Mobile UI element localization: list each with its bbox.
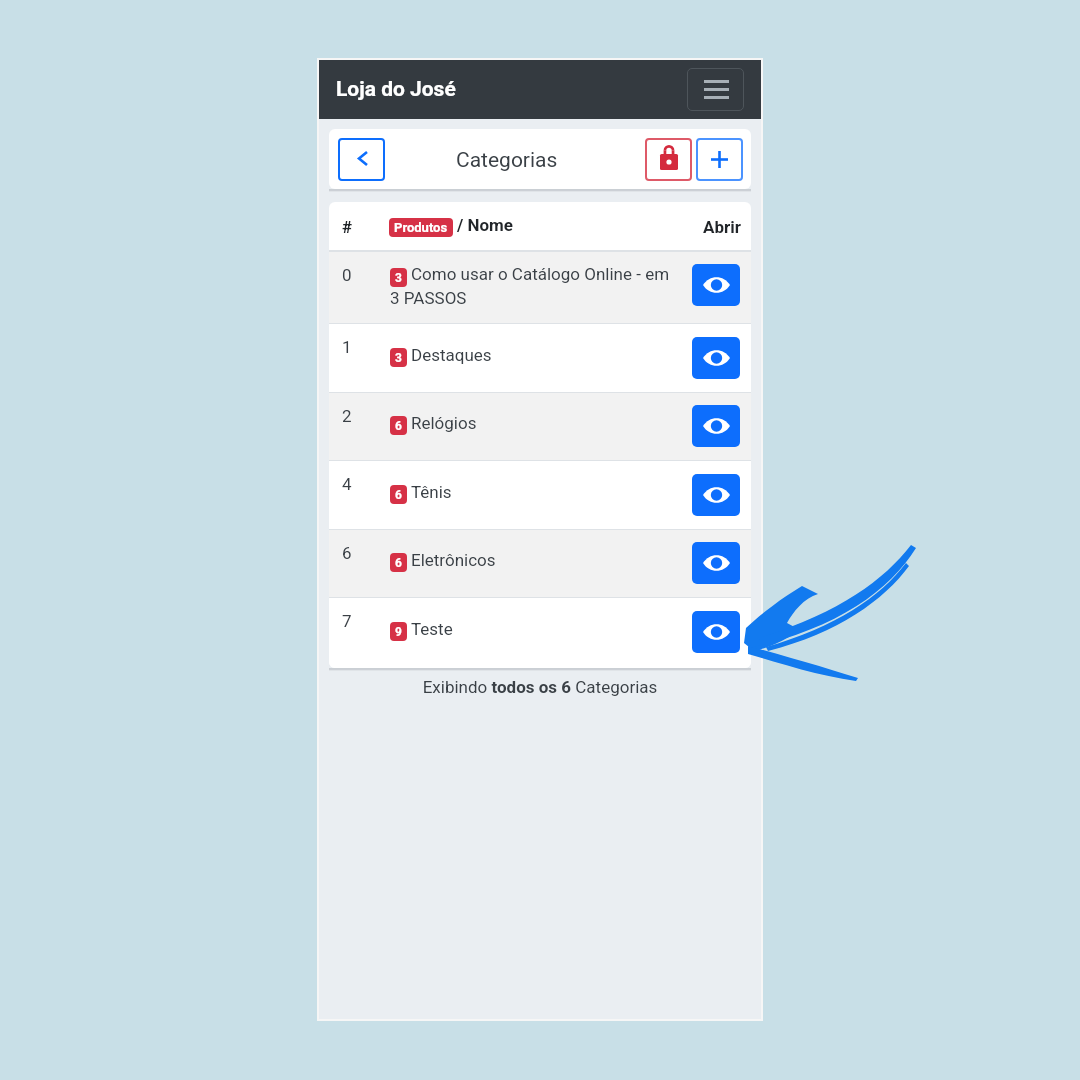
button[interactable]: 6 xyxy=(329,530,751,598)
button[interactable]: Abrir xyxy=(692,337,740,379)
staticText: 6 xyxy=(395,419,402,433)
staticText: / Nome xyxy=(457,215,514,235)
staticText: Categorias xyxy=(456,148,558,173)
staticText: 3 xyxy=(395,271,402,285)
button[interactable]: Adicionar xyxy=(696,138,743,181)
button[interactable]: Abrir xyxy=(692,264,740,306)
staticText: # xyxy=(342,217,353,237)
staticText: 6 xyxy=(342,543,352,563)
staticText: 6 xyxy=(395,488,402,502)
staticText: 7 xyxy=(342,611,352,631)
staticText: 3 xyxy=(395,351,402,365)
button[interactable]: 4 xyxy=(329,461,751,530)
staticText: 0 xyxy=(342,265,352,285)
button[interactable]: Abrir xyxy=(692,542,740,584)
staticText: Como usar o Catálogo Online - em xyxy=(411,264,670,284)
staticText: Teste xyxy=(411,619,453,639)
button[interactable]: Voltar xyxy=(338,138,385,181)
staticText: Eletrônicos xyxy=(411,550,496,570)
staticText: Loja do José xyxy=(336,77,456,102)
staticText: Tênis xyxy=(411,482,452,502)
staticText: 1 xyxy=(342,337,352,357)
staticText: 3 PASSOS xyxy=(390,288,467,308)
button[interactable]: 2 xyxy=(329,393,751,461)
staticText: 4 xyxy=(342,474,352,494)
button[interactable]: 1 xyxy=(329,324,751,393)
button[interactable]: 0 xyxy=(329,252,751,324)
button[interactable]: Menu xyxy=(687,68,744,111)
button[interactable]: Abrir xyxy=(692,474,740,516)
button[interactable]: 7 xyxy=(329,598,751,668)
staticText: 6 xyxy=(395,556,402,570)
button[interactable]: Bloquear xyxy=(645,138,692,181)
staticText: Destaques xyxy=(411,345,492,365)
staticText: Abrir xyxy=(703,217,741,237)
button[interactable]: Abrir xyxy=(692,611,740,653)
staticText: Produtos xyxy=(394,220,448,235)
staticText: Exibindo todos os 6 Categorias xyxy=(319,677,761,697)
button[interactable]: Abrir xyxy=(692,405,740,447)
staticText: 2 xyxy=(342,406,352,426)
staticText: Relógios xyxy=(411,413,477,433)
staticText: 9 xyxy=(395,625,402,639)
